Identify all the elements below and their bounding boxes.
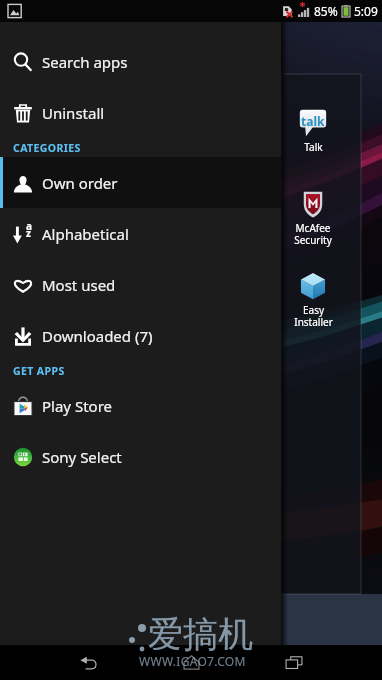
- button[interactable]: Home: [169, 645, 214, 680]
- staticText: Sony Select: [42, 447, 122, 467]
- staticText: 85%: [314, 3, 338, 19]
- staticText: McAfee Security: [294, 221, 332, 247]
- button[interactable]: Sony Select: [0, 431, 281, 482]
- button[interactable]: Own order: [0, 157, 281, 208]
- staticText: Uninstall: [42, 103, 105, 123]
- staticText: Play Store: [42, 396, 112, 416]
- staticText: Search apps: [42, 52, 128, 72]
- staticText: a z: [26, 219, 32, 239]
- button[interactable]: talk: [281, 109, 345, 154]
- button[interactable]: McAfee Security: [281, 190, 345, 247]
- button[interactable]: Downloaded (7): [0, 310, 281, 361]
- button[interactable]: Back: [66, 645, 111, 680]
- staticText: WWW.IGAO7.COM: [139, 653, 246, 669]
- staticText: Downloaded (7): [42, 326, 153, 346]
- button[interactable]: Easy Installer: [281, 272, 345, 329]
- staticText: Own order: [42, 173, 118, 193]
- staticText: talk: [301, 113, 325, 129]
- button[interactable]: Recent apps: [271, 645, 316, 680]
- button[interactable]: Search apps: [0, 36, 281, 87]
- staticText: CATEGORIES: [13, 141, 81, 155]
- button[interactable]: Play Store: [0, 380, 281, 431]
- button[interactable]: Most used: [0, 259, 281, 310]
- staticText: Most used: [42, 275, 116, 295]
- staticText: Alphabetical: [42, 224, 129, 244]
- staticText: Talk: [304, 140, 323, 154]
- staticText: 爱搞机: [148, 612, 253, 656]
- staticText: Easy Installer: [294, 303, 333, 329]
- button[interactable]: Uninstall: [0, 87, 281, 138]
- staticText: GET APPS: [13, 364, 65, 378]
- button[interactable]: a z: [0, 208, 281, 259]
- staticText: 5:09: [354, 3, 378, 19]
